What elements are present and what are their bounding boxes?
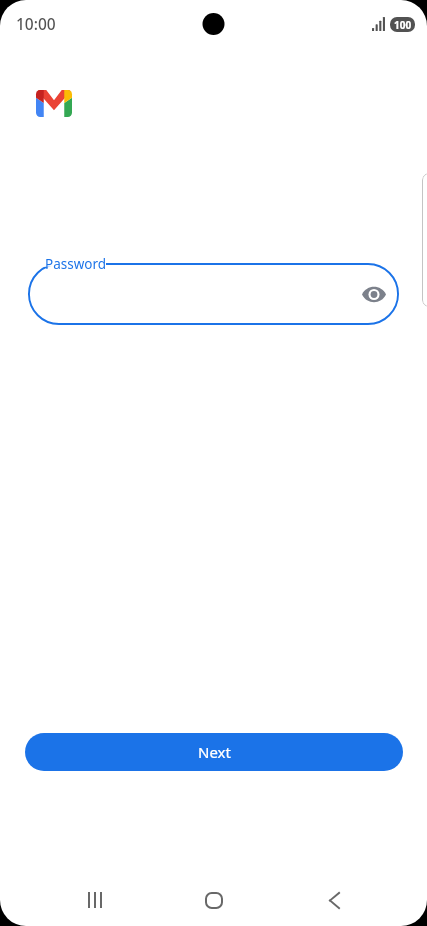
button[interactable]: Show password [355,275,393,313]
button[interactable]: Back [294,871,374,926]
button[interactable]: Password [28,263,399,325]
staticText: Next [198,742,231,762]
staticText: 100 [394,18,412,32]
button[interactable]: Home [174,871,254,926]
staticText: Password [45,255,107,273]
button[interactable]: Next [25,733,403,771]
button[interactable]: Recents [55,871,135,926]
staticText: 10:00 [16,13,56,34]
